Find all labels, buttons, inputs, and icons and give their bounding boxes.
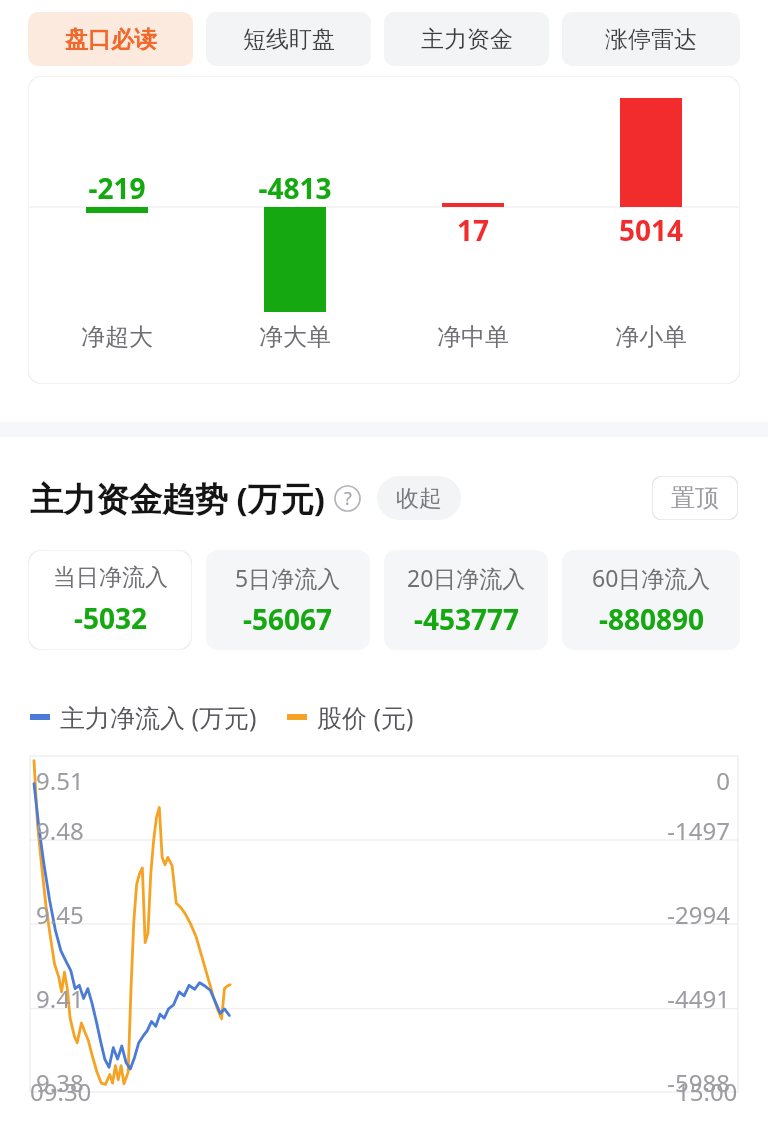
staticText: -4813 [206, 169, 384, 207]
staticText: 主力净流入 (万元) [60, 700, 257, 734]
staticText: 9.41 [36, 982, 84, 1015]
staticText: -1497 [30, 814, 730, 847]
staticText: 0 [30, 764, 730, 797]
staticText: -5032 [74, 599, 148, 637]
button[interactable]: 收起 [377, 476, 461, 520]
staticText: 涨停雷达 [605, 25, 697, 54]
button[interactable]: 20日净流入 [384, 550, 548, 650]
staticText: ? [344, 486, 352, 511]
staticText: 17 [384, 211, 562, 249]
staticText: -2994 [30, 898, 730, 931]
staticText: 主力资金 [421, 25, 513, 54]
button[interactable]: 主力资金 [384, 12, 549, 66]
button[interactable]: 说明 [334, 485, 361, 512]
staticText: 60日净流入 [592, 562, 711, 593]
staticText: 净小单 [562, 322, 740, 352]
staticText: 20日净流入 [407, 562, 526, 593]
staticText: 净中单 [384, 322, 562, 352]
staticText: 9.45 [36, 898, 84, 931]
staticText: 09:30 [30, 1075, 92, 1108]
staticText: 9.48 [36, 814, 84, 847]
staticText: 主力资金趋势 (万元) [30, 476, 325, 521]
staticText: -5988 [30, 1066, 730, 1099]
button[interactable]: 涨停雷达 [562, 12, 740, 66]
staticText: 净大单 [206, 322, 384, 352]
staticText: -880890 [599, 600, 705, 638]
button[interactable]: 短线盯盘 [206, 12, 371, 66]
staticText: -219 [28, 169, 206, 207]
staticText: 5014 [562, 211, 740, 249]
button[interactable]: 置顶 [652, 476, 738, 520]
staticText: 当日净流入 [53, 563, 168, 592]
staticText: 置顶 [671, 483, 719, 513]
staticText: -453777 [414, 600, 520, 638]
staticText: 9.38 [36, 1066, 84, 1099]
button[interactable]: 盘口必读 [28, 12, 193, 66]
staticText: -56067 [243, 600, 333, 638]
staticText: 短线盯盘 [243, 25, 335, 54]
staticText: 9.51 [36, 764, 84, 797]
button[interactable]: 60日净流入 [562, 550, 740, 650]
staticText: 5日净流入 [235, 562, 341, 593]
button[interactable]: 当日净流入 [28, 550, 192, 650]
staticText: 收起 [396, 484, 442, 513]
staticText: 盘口必读 [65, 25, 157, 54]
staticText: 净超大 [28, 322, 206, 352]
staticText: 15:00 [676, 1075, 738, 1108]
staticText: -4491 [30, 982, 730, 1015]
button[interactable]: 5日净流入 [206, 550, 370, 650]
staticText: 股价 (元) [317, 700, 414, 734]
